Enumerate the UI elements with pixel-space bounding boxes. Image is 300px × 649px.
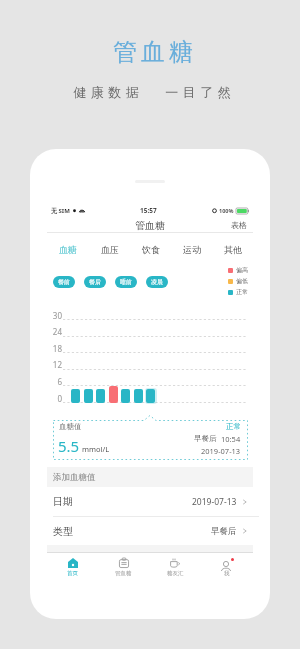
staticText: 血糖 xyxy=(59,244,77,255)
staticText: 餐后 xyxy=(89,278,101,286)
button[interactable]: 睡前 xyxy=(115,276,137,288)
staticText: 15:57 xyxy=(140,206,157,215)
button[interactable]: Home xyxy=(47,553,98,578)
staticText: 早餐后 xyxy=(211,526,237,537)
button[interactable]: Profile xyxy=(201,553,253,578)
staticText: 类型 xyxy=(53,525,73,538)
button[interactable]: 餐后 xyxy=(84,276,106,288)
button[interactable]: 类型 xyxy=(47,517,253,545)
staticText: 10:54 xyxy=(221,434,241,444)
staticText: 管血糖 xyxy=(115,570,132,577)
staticText: 一目了然 xyxy=(163,84,233,100)
button[interactable]: 运动 xyxy=(171,233,212,256)
staticText: 12 xyxy=(48,359,62,370)
staticText: 糖友汇 xyxy=(167,570,184,577)
staticText: 我 xyxy=(224,570,230,577)
staticText: 偏高 xyxy=(236,266,248,274)
staticText: 运动 xyxy=(183,244,201,255)
staticText: 正常 xyxy=(236,288,248,296)
staticText: 凌晨 xyxy=(151,278,163,286)
staticText: 30 xyxy=(48,310,62,321)
button[interactable]: 日期 xyxy=(47,487,253,516)
button[interactable]: 血糖 xyxy=(47,233,89,256)
staticText: 睡前 xyxy=(120,278,132,286)
button[interactable]: 血压 xyxy=(89,233,130,256)
staticText: 0 xyxy=(48,393,62,404)
staticText: 正常 xyxy=(226,422,241,431)
staticText: 无 SIM xyxy=(51,207,70,215)
staticText: 添加血糖值 xyxy=(53,472,96,483)
staticText: 偏低 xyxy=(236,277,248,285)
staticText: 2019-07-13 xyxy=(192,496,237,508)
staticText: 血压 xyxy=(101,244,119,255)
staticText: 健康数据 xyxy=(71,84,141,100)
button[interactable]: 餐前 xyxy=(53,276,75,288)
staticText: 餐前 xyxy=(58,278,70,286)
staticText: 早餐后 xyxy=(194,434,217,443)
staticText: 饮食 xyxy=(142,244,160,255)
button[interactable]: 凌晨 xyxy=(146,276,168,288)
button[interactable]: 表格 xyxy=(231,220,247,230)
staticText: 其他 xyxy=(224,244,242,255)
staticText: 管血糖 xyxy=(111,37,195,67)
staticText: 24 xyxy=(48,326,62,337)
staticText: 18 xyxy=(48,343,62,354)
button[interactable]: 饮食 xyxy=(130,233,171,256)
staticText: 2019-07-13 xyxy=(201,446,241,456)
staticText: 首页 xyxy=(67,570,78,577)
staticText: 6 xyxy=(48,376,62,387)
staticText: 日期 xyxy=(53,495,73,508)
staticText: 血糖值 xyxy=(59,422,82,431)
staticText: mmol/L xyxy=(82,444,110,454)
staticText: 5.5 xyxy=(58,436,80,456)
staticText: 管血糖 xyxy=(135,219,165,232)
button[interactable]: 其他 xyxy=(212,233,253,256)
button[interactable]: Community xyxy=(149,553,201,578)
button[interactable]: Blood sugar xyxy=(98,553,149,578)
staticText: 100% xyxy=(219,207,234,214)
